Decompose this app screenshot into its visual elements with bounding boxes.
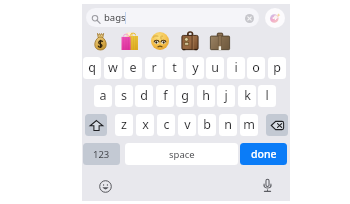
button[interactable]: i [227, 57, 245, 79]
staticText: w [108, 59, 118, 76]
staticText: k [244, 87, 251, 104]
staticText: t [172, 59, 177, 76]
button[interactable]: Clear search [245, 14, 254, 23]
button[interactable]: e [124, 57, 142, 79]
button[interactable]: q [83, 57, 101, 79]
button[interactable]: g [176, 85, 194, 107]
button[interactable]: space [125, 143, 238, 165]
staticText: z [121, 116, 127, 133]
button[interactable]: t [165, 57, 183, 79]
button[interactable]: d [135, 85, 153, 107]
staticText: n [224, 116, 232, 133]
button[interactable] [86, 8, 259, 27]
staticText: bags [104, 11, 126, 24]
staticText: space [169, 148, 195, 161]
button[interactable]: 123 [83, 143, 120, 165]
staticText: q [88, 59, 96, 76]
button[interactable]: n [219, 114, 237, 136]
button[interactable]: a [94, 85, 112, 107]
staticText: m [243, 116, 255, 133]
button[interactable]: p [268, 57, 286, 79]
staticText: c [163, 116, 170, 133]
staticText: i [234, 59, 238, 76]
staticText: h [202, 87, 210, 104]
button[interactable]: done [240, 143, 287, 165]
button[interactable]: l [258, 85, 276, 107]
button[interactable]: v [178, 114, 196, 136]
button[interactable]: briefcase [210, 33, 230, 50]
staticText: v [184, 116, 191, 133]
staticText: e [129, 59, 137, 76]
button[interactable]: j [217, 85, 235, 107]
staticText: x [142, 116, 149, 133]
staticText: f [163, 87, 168, 104]
staticText: d [140, 87, 148, 104]
button[interactable]: shopping bags [121, 32, 138, 50]
staticText: o [252, 59, 260, 76]
button[interactable]: Create sticker [265, 8, 285, 28]
staticText: done [251, 147, 277, 161]
button[interactable]: s [115, 85, 133, 107]
button[interactable]: h [197, 85, 215, 107]
staticText: g [181, 87, 189, 104]
button[interactable]: r [145, 57, 163, 79]
staticText: b [203, 116, 211, 133]
button[interactable]: Emoji keyboard [98, 179, 113, 194]
button[interactable]: m [240, 114, 258, 136]
staticText: y [192, 59, 199, 76]
button[interactable]: b [198, 114, 216, 136]
staticText: p [273, 59, 281, 76]
staticText: a [99, 87, 107, 104]
button[interactable]: y [186, 57, 204, 79]
button[interactable]: f [156, 85, 174, 107]
button[interactable]: u [206, 57, 224, 79]
button[interactable]: money bag [93, 33, 108, 50]
staticText: j [224, 87, 228, 104]
button[interactable]: c [157, 114, 175, 136]
button[interactable]: w [104, 57, 122, 79]
staticText: r [151, 59, 157, 76]
staticText: s [121, 87, 127, 104]
staticText: l [265, 87, 269, 104]
button[interactable]: Voice input [261, 177, 274, 194]
staticText: u [211, 59, 219, 76]
button[interactable]: Shift [85, 114, 107, 136]
button[interactable]: Backspace [266, 114, 288, 136]
button[interactable]: pensive face [151, 32, 169, 50]
button[interactable]: x [136, 114, 154, 136]
button[interactable]: luggage [181, 32, 199, 50]
button[interactable]: z [115, 114, 133, 136]
button[interactable]: o [247, 57, 265, 79]
staticText: 123 [93, 148, 110, 161]
button[interactable]: k [238, 85, 256, 107]
